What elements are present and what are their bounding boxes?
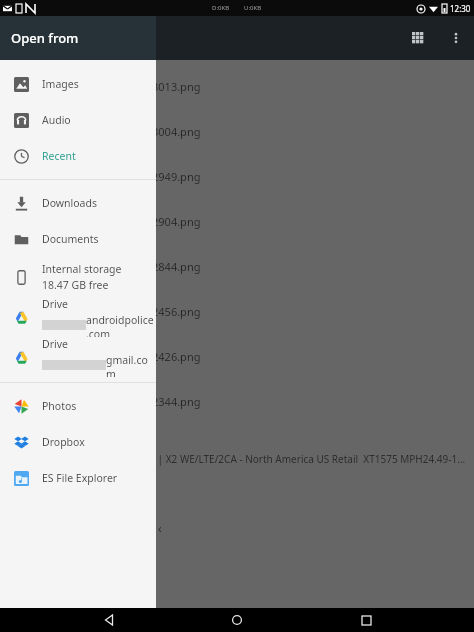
button[interactable]: Open from xyxy=(0,16,156,60)
button[interactable]: 2456.png xyxy=(0,289,474,334)
staticText: Dropbox xyxy=(42,435,85,449)
staticText: ES File Explorer xyxy=(42,471,118,485)
staticText: Internal storage xyxy=(42,262,122,276)
staticText: androidpolice.com xyxy=(86,313,156,337)
staticText: 2904.png xyxy=(152,214,201,229)
button[interactable]: Dropbox xyxy=(0,424,156,460)
button[interactable]: Drive xyxy=(0,337,156,377)
staticText: Documents xyxy=(42,232,99,246)
staticText: ) | X2 WE/LTE/2CA - North America US Ret… xyxy=(152,452,466,466)
staticText: 12:30 xyxy=(450,3,471,14)
button[interactable]: Grid view xyxy=(398,18,438,58)
staticText: 2456.png xyxy=(152,304,201,319)
button[interactable]: 2426.png xyxy=(0,334,474,379)
button[interactable]: 2904.png xyxy=(0,199,474,244)
staticText: Audio xyxy=(42,113,71,127)
staticText: U:0KB xyxy=(244,4,262,12)
button[interactable]: 3004.png xyxy=(0,109,474,154)
button[interactable]: Recent apps xyxy=(346,608,386,632)
staticText: Images xyxy=(42,77,79,91)
staticText: 2949.png xyxy=(152,169,201,184)
staticText: Photos xyxy=(42,399,77,413)
button[interactable]: Documents xyxy=(0,221,156,257)
button[interactable]: 3013.png xyxy=(0,64,474,109)
staticText: D:0KB xyxy=(212,4,230,12)
staticText: 3013.png xyxy=(152,79,201,94)
button[interactable]: 2844.png xyxy=(0,244,474,289)
staticText: 3004.png xyxy=(152,124,201,139)
staticText: 18.47 GB free xyxy=(42,278,109,292)
staticText: ‹ xyxy=(158,520,162,536)
button[interactable]: Back xyxy=(89,608,129,632)
button[interactable]: Home xyxy=(217,608,257,632)
staticText: gmail.com xyxy=(106,353,156,377)
staticText: Drive xyxy=(42,297,68,311)
staticText: Downloads xyxy=(42,196,97,210)
staticText: Recent xyxy=(42,149,76,163)
button[interactable]: Internal storage xyxy=(0,257,156,297)
staticText: Drive xyxy=(42,337,68,351)
button[interactable]: More options xyxy=(438,20,474,56)
button[interactable]: Recent xyxy=(0,138,156,174)
button[interactable]: Audio xyxy=(0,102,156,138)
button[interactable]: 2344.png xyxy=(0,379,474,424)
button[interactable]: ES File Explorer xyxy=(0,460,156,496)
button[interactable]: Downloads xyxy=(0,185,156,221)
button[interactable]: Photos xyxy=(0,388,156,424)
button[interactable]: Images xyxy=(0,66,156,102)
staticText: 2844.png xyxy=(152,259,201,274)
staticText: 2344.png xyxy=(152,394,201,409)
button[interactable]: Drive xyxy=(0,297,156,337)
staticText: Open from xyxy=(11,29,79,47)
button[interactable]: 2949.png xyxy=(0,154,474,199)
staticText: 2426.png xyxy=(152,349,201,364)
